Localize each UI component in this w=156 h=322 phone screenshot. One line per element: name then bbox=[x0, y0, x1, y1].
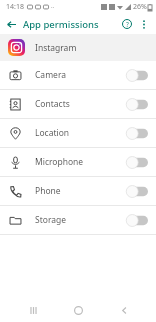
button[interactable]: Recent apps bbox=[20, 298, 46, 322]
button[interactable]: Home bbox=[65, 298, 91, 322]
staticText: App permissions bbox=[23, 18, 99, 31]
staticText: Camera bbox=[35, 69, 66, 81]
staticText: Instagram bbox=[35, 42, 77, 54]
button[interactable]: Location bbox=[0, 119, 156, 147]
button[interactable]: More options bbox=[136, 15, 152, 33]
staticText: Microphone bbox=[35, 156, 84, 168]
button[interactable]: Toggle permission bbox=[126, 214, 148, 227]
button[interactable]: Toggle permission bbox=[126, 98, 148, 111]
button[interactable]: Toggle permission bbox=[126, 69, 148, 82]
button[interactable]: Toggle permission bbox=[126, 127, 148, 140]
staticText: Storage bbox=[35, 214, 67, 226]
staticText: Contacts bbox=[35, 98, 70, 110]
staticText: ·· bbox=[51, 3, 55, 11]
button[interactable]: Toggle permission bbox=[126, 156, 148, 169]
button[interactable]: Instagram bbox=[0, 34, 156, 61]
button[interactable]: Back bbox=[111, 298, 137, 322]
staticText: Location bbox=[35, 127, 70, 139]
button[interactable]: Camera bbox=[0, 61, 156, 89]
button[interactable]: Storage bbox=[0, 206, 156, 234]
staticText: 14:18 bbox=[6, 2, 24, 12]
button[interactable]: Phone bbox=[0, 177, 156, 205]
button[interactable]: Help bbox=[118, 15, 136, 33]
button[interactable]: Microphone bbox=[0, 148, 156, 176]
button[interactable]: Back bbox=[3, 16, 19, 32]
button[interactable]: Contacts bbox=[0, 90, 156, 118]
staticText: Phone bbox=[35, 185, 61, 197]
staticText: ? bbox=[126, 20, 129, 29]
staticText: 26% bbox=[133, 2, 147, 12]
button[interactable]: Toggle permission bbox=[126, 185, 148, 198]
